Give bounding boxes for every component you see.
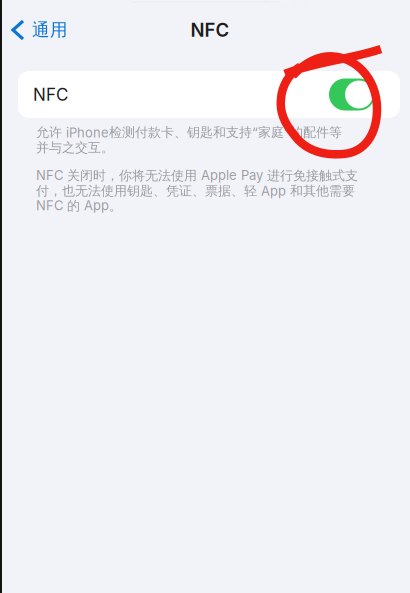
staticText: NFC 的 App。 <box>36 198 122 214</box>
button[interactable]: 通用 <box>13 12 91 48</box>
staticText: NFC <box>33 84 68 105</box>
staticText: 允许 iPhone检测付款卡、钥匙和支持“家庭”的配件等 <box>36 125 342 140</box>
staticText: NFC <box>190 19 229 41</box>
staticText: 付，也无法使用钥匙、凭证、票据、轻 App 和其他需要 <box>36 183 355 198</box>
button[interactable]: NFC <box>18 71 400 118</box>
staticText: 并与之交互。 <box>36 140 114 155</box>
staticText: NFC 关闭时，你将无法使用 Apple Pay 进行免接触式支 <box>36 168 358 183</box>
staticText: 通用 <box>32 19 68 41</box>
